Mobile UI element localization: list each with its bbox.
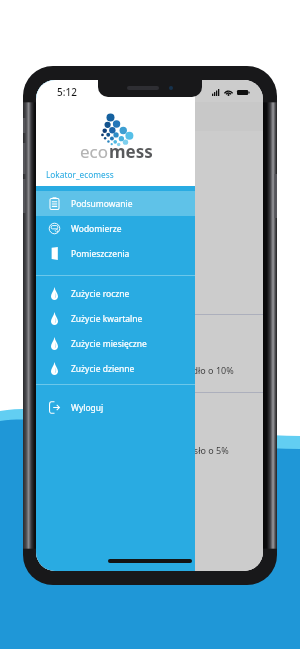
button[interactable]: Pomieszczenia <box>36 241 195 266</box>
button[interactable]: Zużycie roczne <box>36 281 195 306</box>
staticText: Zużycie roczne <box>71 288 130 300</box>
staticText: 5:12 <box>57 85 77 99</box>
staticText: Wodomierze <box>71 223 122 235</box>
staticText: Lokator_ecomess <box>46 169 114 180</box>
staticText: Zużycie wody spadło o 10% <box>119 364 234 376</box>
staticText: Zużycie kwartalne <box>71 313 143 325</box>
staticText: Zużycie miesięczne <box>71 338 147 350</box>
button[interactable]: Podsumowanie <box>36 191 195 216</box>
staticText: eco <box>80 140 109 163</box>
button[interactable]: Zużycie miesięczne <box>36 331 195 356</box>
button[interactable]: Zużycie kwartalne <box>36 306 195 331</box>
staticText: Pomieszczenia <box>71 248 130 260</box>
staticText: Wyloguj <box>71 402 104 414</box>
button[interactable]: Zużycie dzienne <box>36 356 195 381</box>
staticText: Zużycie wody wzrosło o 5% <box>115 444 229 456</box>
staticText: mess <box>109 140 153 163</box>
staticText: Podsumowanie <box>71 198 133 210</box>
button[interactable]: Wodomierze <box>36 216 195 241</box>
staticText: Zużycie dzienne <box>71 363 135 375</box>
button[interactable]: Wyloguj <box>36 395 195 420</box>
